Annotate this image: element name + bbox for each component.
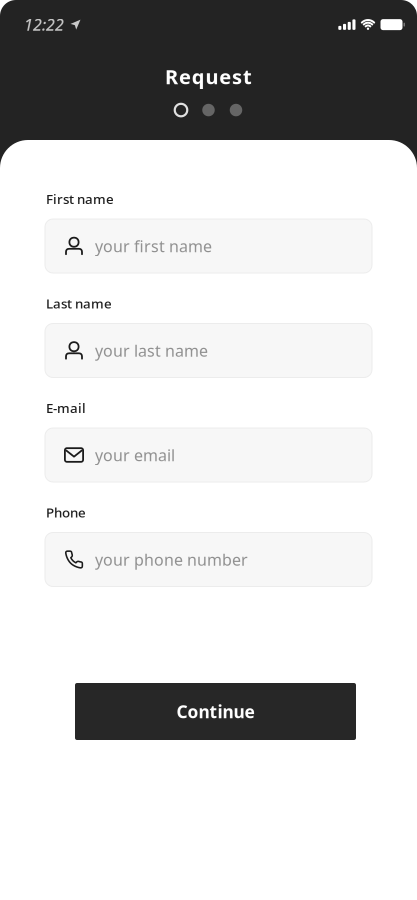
- staticText: Continue: [176, 700, 254, 723]
- button[interactable]: your last name: [45, 323, 372, 377]
- staticText: your email: [95, 444, 175, 466]
- staticText: 12:22: [24, 14, 64, 35]
- button[interactable]: Page 2: [202, 104, 215, 116]
- button[interactable]: Page 1: [175, 104, 187, 116]
- button[interactable]: Continue: [75, 683, 356, 740]
- staticText: E-mail: [46, 399, 86, 417]
- staticText: Phone: [46, 503, 86, 521]
- button[interactable]: your email: [45, 428, 372, 482]
- staticText: your first name: [95, 235, 212, 257]
- staticText: Request: [165, 63, 252, 90]
- staticText: your last name: [95, 340, 208, 361]
- button[interactable]: your first name: [45, 219, 372, 273]
- staticText: Last name: [46, 294, 112, 312]
- button[interactable]: Page 3: [230, 104, 242, 116]
- button[interactable]: your phone number: [45, 532, 372, 586]
- staticText: First name: [46, 190, 114, 208]
- staticText: your phone number: [95, 549, 248, 570]
